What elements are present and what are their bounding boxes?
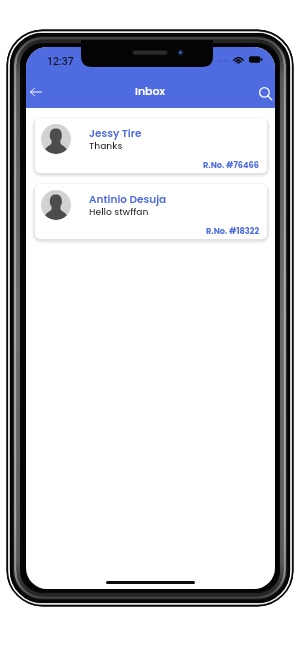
staticText: Thanks	[89, 139, 123, 152]
staticText: R.No. #18322	[206, 225, 260, 236]
staticText: Jessy Tire	[89, 126, 142, 141]
button[interactable]: Antinio Desuja	[35, 184, 267, 239]
button[interactable]: Search	[252, 80, 275, 106]
staticText: R.No. #76466	[203, 159, 260, 170]
button[interactable]: Back	[26, 79, 49, 105]
staticText: Inbox	[135, 83, 166, 98]
staticText: Antinio Desuja	[89, 192, 167, 207]
staticText: Hello stwffan	[89, 205, 149, 218]
button[interactable]: Jessy Tire	[35, 118, 267, 173]
staticText: 12:37	[47, 55, 74, 67]
